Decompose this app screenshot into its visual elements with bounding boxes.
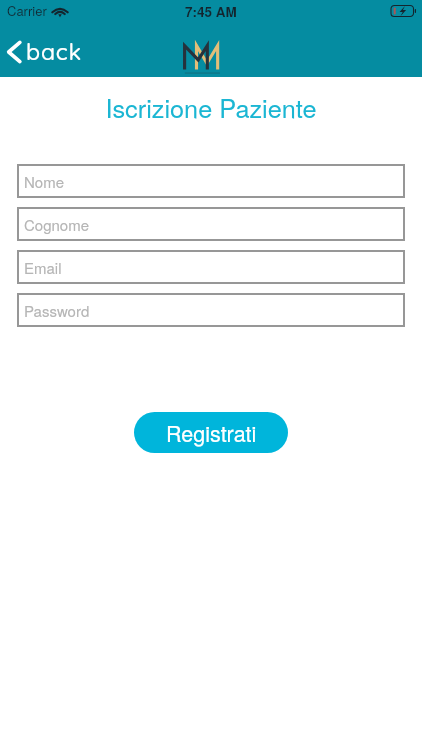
other: Battery (391, 5, 416, 17)
staticText: Iscrizione Paziente (0, 89, 422, 125)
staticText: 7:45 AM (185, 2, 237, 21)
staticText: back (26, 37, 82, 66)
staticText: Nome (24, 171, 65, 192)
button[interactable]: Cognome (17, 207, 405, 241)
button[interactable]: Registrati (134, 412, 288, 453)
staticText: Email (24, 257, 62, 278)
button[interactable]: Nome (17, 164, 405, 198)
staticText: Carrier (7, 1, 47, 20)
staticText: Cognome (24, 214, 90, 235)
staticText: Registrati (166, 417, 257, 448)
other: Wifi (52, 4, 68, 17)
other: Logo (183, 44, 221, 71)
button[interactable]: back (0, 31, 96, 72)
staticText: Password (24, 300, 90, 321)
button[interactable]: Password (17, 293, 405, 327)
button[interactable]: Email (17, 250, 405, 284)
